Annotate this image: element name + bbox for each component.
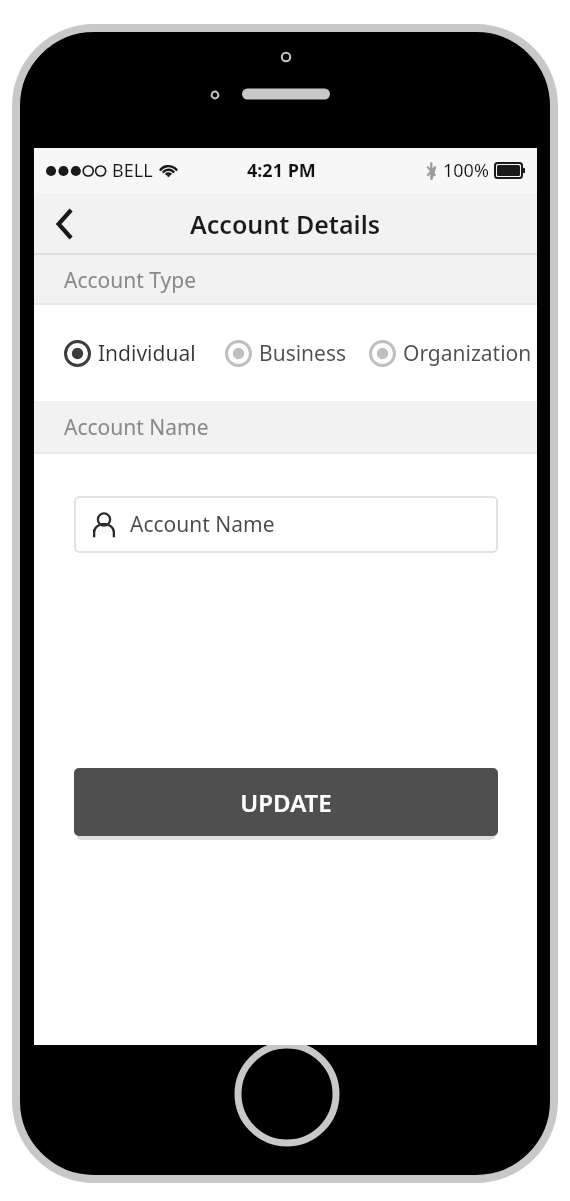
button[interactable]: Business — [225, 339, 347, 368]
staticText: Account Details — [190, 207, 381, 241]
staticText: Business — [259, 339, 347, 368]
staticText: Account Type — [64, 266, 197, 295]
button[interactable]: UPDATE — [74, 768, 498, 836]
staticText: 100% — [443, 158, 489, 183]
staticText: Organization — [403, 339, 532, 368]
button[interactable]: Account Name — [74, 496, 498, 553]
button[interactable]: Back — [34, 193, 96, 255]
staticText: Individual — [98, 339, 196, 368]
button[interactable]: Organization — [369, 339, 532, 368]
staticText: Account Name — [130, 510, 275, 539]
staticText: 4:21 PM — [247, 158, 316, 183]
button[interactable]: Individual — [64, 339, 196, 368]
staticText: UPDATE — [240, 786, 332, 819]
staticText: BELL — [112, 158, 153, 183]
staticText: Account Name — [64, 413, 209, 442]
